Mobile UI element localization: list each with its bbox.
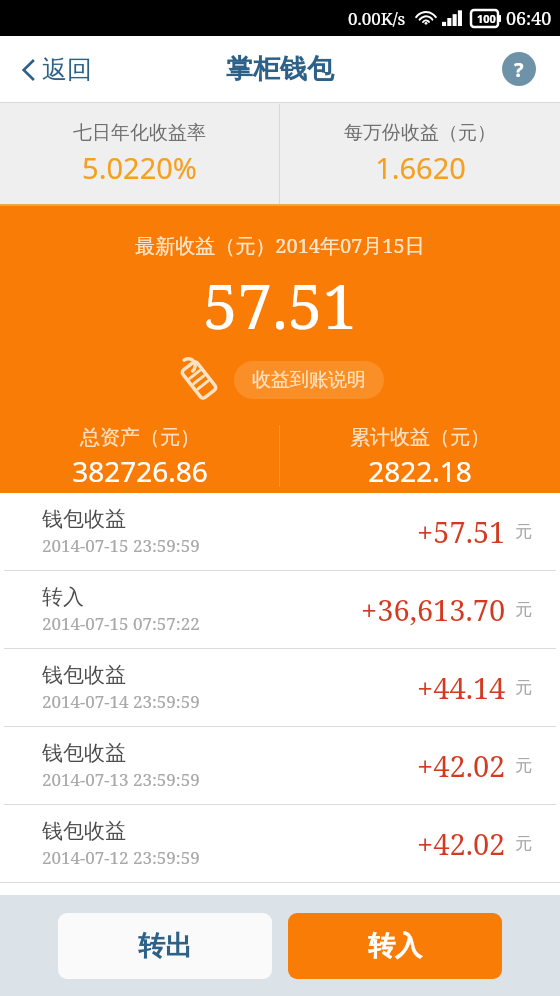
staticText: ?	[514, 56, 524, 83]
staticText: 1.6620	[375, 148, 466, 187]
button[interactable]: 七日年化收益率	[0, 102, 279, 206]
button[interactable]: 总资产（元）	[0, 425, 279, 490]
staticText: 钱包收益	[42, 506, 126, 532]
button[interactable]: 转出	[58, 913, 272, 979]
staticText: 2014-07-13 23:59:59	[42, 768, 200, 791]
staticText: 返回	[42, 54, 92, 85]
staticText: 2014-07-15 23:59:59	[42, 534, 200, 557]
button[interactable]: 每万份收益（元）	[280, 102, 560, 206]
button[interactable]: 钱包收益	[0, 805, 560, 882]
staticText: 掌柜钱包	[226, 52, 334, 86]
staticText: 382726.86	[72, 452, 208, 490]
staticText: 5.0220%	[82, 148, 197, 187]
staticText: 元	[515, 677, 532, 698]
staticText: 收益到账说明	[252, 368, 366, 392]
staticText: 100	[477, 11, 496, 26]
staticText: 06:40	[506, 6, 552, 31]
staticText: +36,613.70	[361, 590, 506, 629]
staticText: +42.02	[417, 746, 506, 785]
staticText: 元	[515, 599, 532, 620]
staticText: +57.51	[417, 512, 506, 551]
staticText: 每万份收益（元）	[344, 121, 496, 145]
other: Receipt	[176, 357, 222, 403]
staticText: 2822.18	[368, 452, 472, 490]
staticText: 0.00K/s	[348, 7, 406, 30]
button[interactable]: 钱包收益	[0, 727, 560, 804]
staticText: 累计收益（元）	[350, 425, 490, 450]
staticText: 元	[515, 521, 532, 542]
staticText: 七日年化收益率	[73, 121, 206, 145]
staticText: +44.14	[417, 668, 506, 707]
button[interactable]: 转入	[288, 913, 502, 979]
staticText: 总资产（元）	[80, 425, 200, 450]
button[interactable]: 钱包收益	[0, 493, 560, 570]
button[interactable]: 转入	[0, 571, 560, 648]
staticText: 转入	[42, 584, 84, 610]
staticText: 元	[515, 833, 532, 854]
staticText: 2014-07-14 23:59:59	[42, 690, 200, 713]
staticText: 转出	[138, 929, 192, 963]
button[interactable]: 返回	[14, 48, 100, 91]
staticText: 钱包收益	[42, 662, 126, 688]
button[interactable]: 钱包收益	[0, 649, 560, 726]
button[interactable]: Help	[502, 52, 536, 86]
staticText: 钱包收益	[42, 818, 126, 844]
button[interactable]: 收益到账说明	[234, 361, 384, 399]
staticText: 2014-07-12 23:59:59	[42, 846, 200, 869]
staticText: 转入	[368, 929, 422, 963]
staticText: 元	[515, 755, 532, 776]
staticText: 57.51	[0, 263, 560, 347]
button[interactable]: 累计收益（元）	[280, 425, 560, 490]
staticText: +42.02	[417, 824, 506, 863]
staticText: 最新收益（元）2014年07月15日	[0, 232, 560, 259]
staticText: 2014-07-15 07:57:22	[42, 612, 200, 635]
staticText: 钱包收益	[42, 740, 126, 766]
